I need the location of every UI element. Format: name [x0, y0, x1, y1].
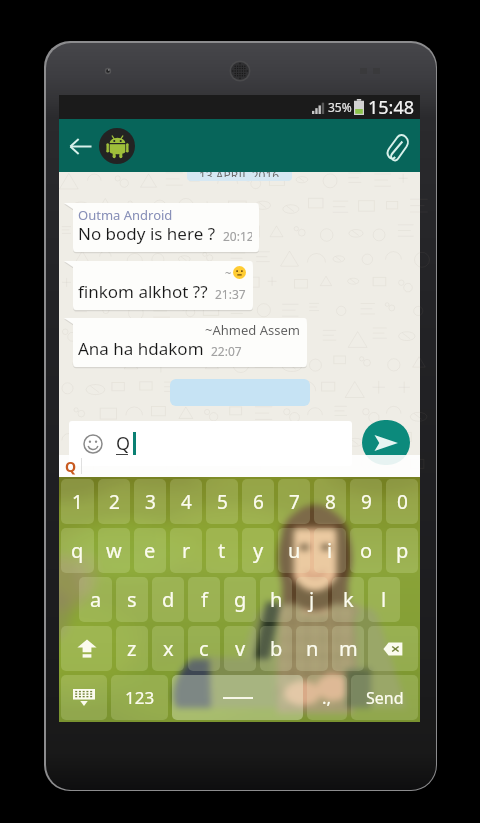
staticText: o	[360, 537, 373, 564]
button[interactable]: Contact avatar	[99, 128, 135, 164]
staticText: q	[71, 537, 84, 564]
button[interactable]: n	[296, 626, 328, 671]
staticText: 2	[109, 489, 120, 515]
staticText: 0	[397, 489, 408, 515]
button[interactable]: 5	[206, 479, 238, 524]
staticText: 6	[253, 489, 264, 515]
staticText: f	[201, 586, 208, 613]
button[interactable]: i	[314, 528, 346, 573]
staticText: 22:07	[211, 343, 242, 359]
button[interactable]: v	[224, 626, 256, 671]
button[interactable]: s	[116, 577, 148, 622]
staticText: finkom alkhot ??	[78, 280, 208, 303]
button[interactable]: ~Ahmed Assem	[64, 318, 307, 367]
button[interactable]: l	[368, 577, 400, 622]
staticText: Q	[116, 431, 131, 456]
button[interactable]: r	[170, 528, 202, 573]
staticText: Outma Android	[78, 206, 173, 222]
button[interactable]: u	[278, 528, 310, 573]
button[interactable]: 0	[386, 479, 418, 524]
button[interactable]: Backspace	[368, 626, 418, 671]
button[interactable]: b	[260, 626, 292, 671]
button[interactable]: y	[242, 528, 274, 573]
staticText: ~Ahmed Assem	[205, 321, 300, 337]
button[interactable]: f	[188, 577, 220, 622]
staticText: 3	[145, 489, 156, 515]
staticText: 15:48	[368, 95, 415, 119]
staticText: 1	[72, 489, 83, 515]
button[interactable]: Send	[362, 420, 410, 465]
staticText: b	[270, 635, 283, 662]
button[interactable]: t	[206, 528, 238, 573]
button[interactable]: .,	[307, 675, 347, 720]
button[interactable]: 1	[61, 479, 94, 524]
button[interactable]: Attach	[374, 123, 418, 169]
button[interactable]: z	[116, 626, 148, 671]
staticText: .,	[322, 686, 332, 709]
staticText: Send	[366, 687, 404, 709]
button[interactable]: 3	[134, 479, 166, 524]
staticText: r	[182, 537, 191, 564]
staticText: p	[396, 537, 409, 564]
staticText: e	[144, 537, 156, 564]
staticText: 21:37	[215, 286, 246, 302]
button[interactable]: e	[134, 528, 166, 573]
staticText: u	[288, 537, 301, 564]
button[interactable]: a	[79, 577, 112, 622]
button[interactable]: ~	[64, 261, 253, 310]
button[interactable]: 2	[98, 479, 130, 524]
button[interactable]: Send	[351, 675, 418, 720]
staticText: 35%	[328, 99, 352, 115]
button[interactable]: 7	[278, 479, 310, 524]
button[interactable]: j	[296, 577, 328, 622]
staticText: 5	[217, 489, 228, 515]
staticText: 7	[289, 489, 300, 515]
button[interactable]: p	[386, 528, 418, 573]
staticText: a	[90, 586, 102, 613]
staticText: Q	[65, 457, 77, 476]
staticText: ~	[225, 265, 232, 280]
staticText: v	[235, 635, 246, 662]
button[interactable]: Shift	[61, 626, 112, 671]
staticText: h	[270, 586, 283, 613]
staticText: l	[381, 586, 387, 613]
button[interactable]: x	[152, 626, 184, 671]
staticText: k	[343, 586, 354, 613]
button[interactable]: w	[98, 528, 130, 573]
staticText: 9	[361, 489, 372, 515]
staticText: 20:12	[223, 228, 252, 244]
button[interactable]: o	[350, 528, 382, 573]
button[interactable]: 4	[170, 479, 202, 524]
button[interactable]: h	[260, 577, 292, 622]
button[interactable]: g	[224, 577, 256, 622]
staticText: x	[163, 635, 174, 662]
button[interactable]: k	[332, 577, 364, 622]
staticText: i	[327, 537, 333, 564]
staticText: c	[199, 635, 209, 662]
staticText: z	[127, 635, 137, 662]
button[interactable]: 6	[242, 479, 274, 524]
staticText: No body is here ?	[78, 222, 216, 245]
staticText: m	[339, 635, 358, 662]
staticText: w	[106, 537, 122, 564]
button[interactable]: Outma Android	[64, 203, 259, 252]
button[interactable]: 8	[314, 479, 346, 524]
staticText: 8	[325, 489, 336, 515]
staticText: y	[253, 537, 264, 564]
button[interactable]: Back	[63, 124, 97, 168]
button[interactable]: Space	[172, 675, 303, 720]
button[interactable]: Q	[69, 421, 352, 466]
staticText: g	[234, 586, 247, 613]
button[interactable]: d	[152, 577, 184, 622]
button[interactable]: Switch keyboard	[61, 675, 107, 720]
staticText: j	[309, 586, 315, 613]
button[interactable]: q	[61, 528, 94, 573]
button[interactable]: m	[332, 626, 364, 671]
button[interactable]: 123	[111, 675, 168, 720]
staticText: s	[127, 586, 137, 613]
staticText: 123	[125, 686, 155, 709]
button[interactable]: 9	[350, 479, 382, 524]
staticText: d	[162, 586, 175, 613]
button[interactable]: c	[188, 626, 220, 671]
staticText: 13 APRIL 2016	[199, 172, 280, 177]
